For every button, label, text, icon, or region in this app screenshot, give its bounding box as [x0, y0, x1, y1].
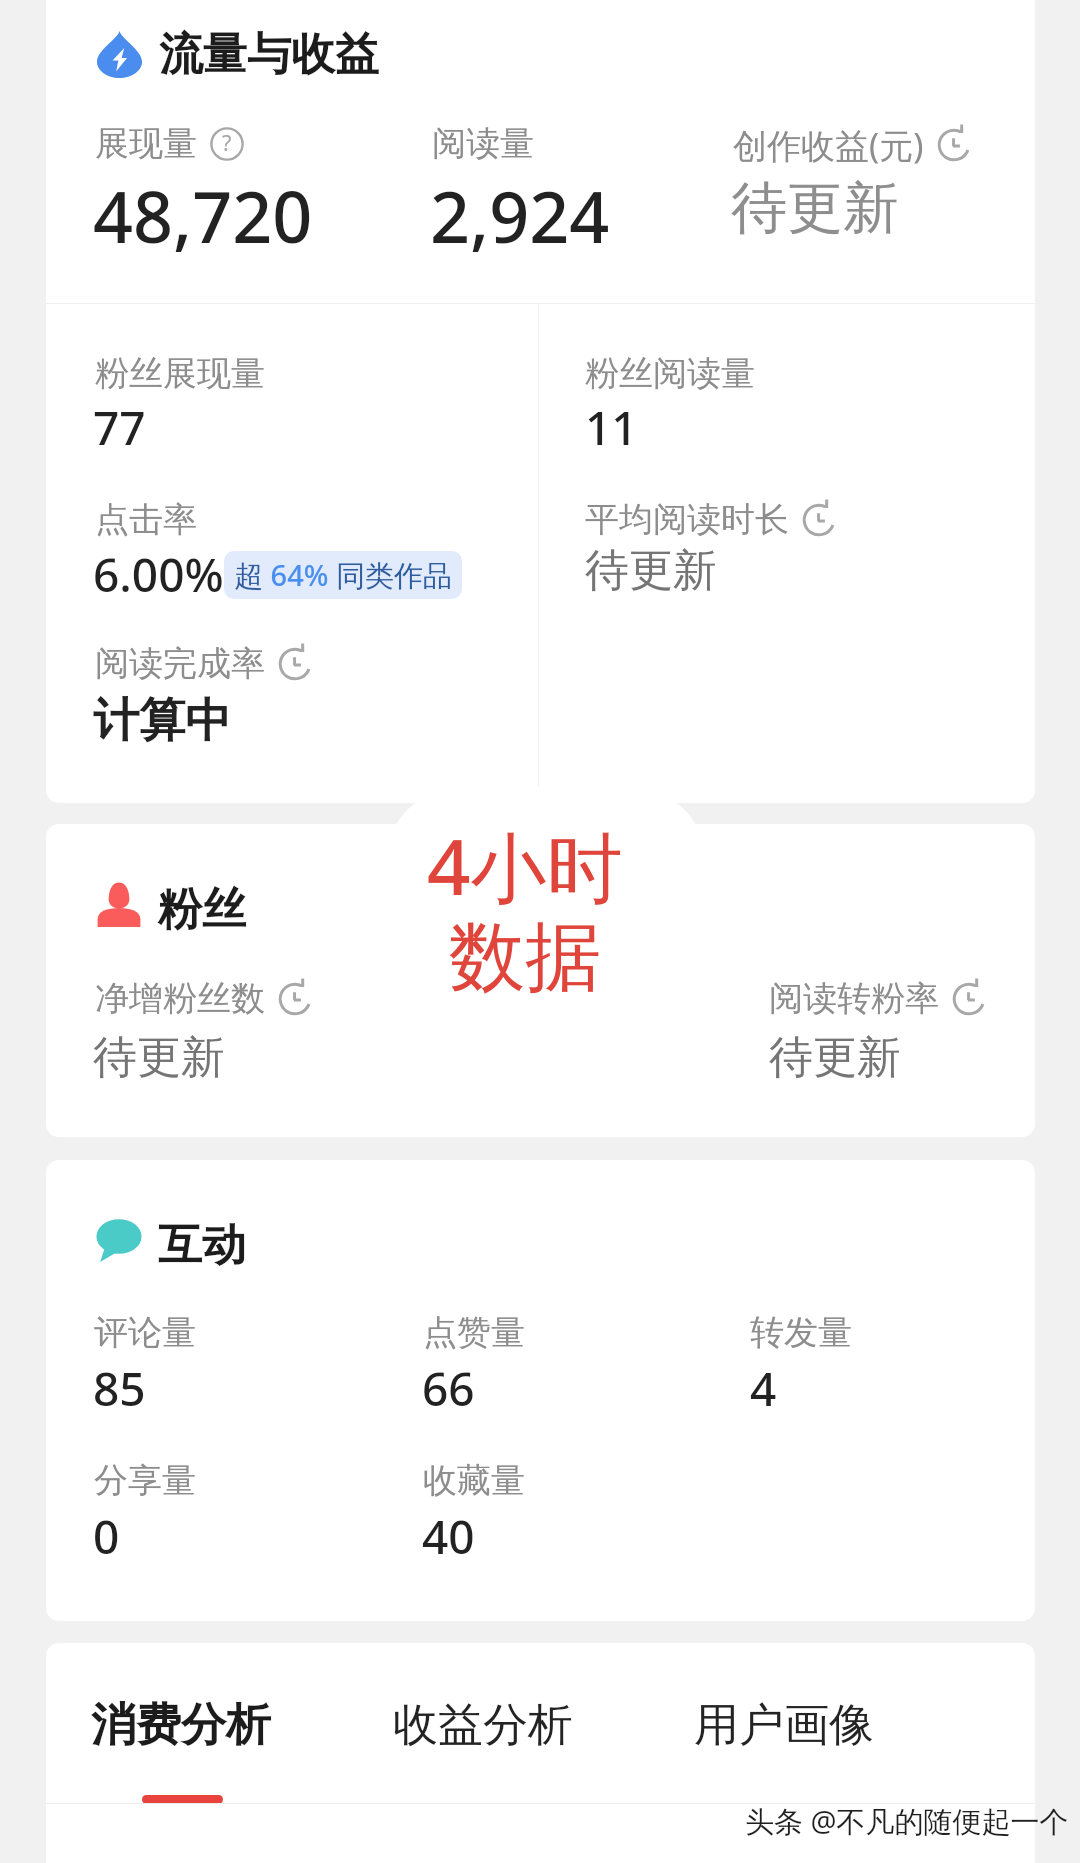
button[interactable]: 收益分析 [368, 1661, 608, 1781]
staticText: 粉丝阅读量 [585, 352, 755, 395]
staticText: 转发量 [750, 1311, 852, 1354]
button[interactable]: 指标说明 [210, 127, 244, 161]
button[interactable]: 用户画像 [669, 1661, 909, 1781]
staticText: 评论量 [94, 1311, 196, 1354]
staticText: 阅读完成率 [95, 642, 265, 685]
button[interactable]: 消费分析 [66, 1661, 306, 1781]
staticText: 85 [93, 1357, 146, 1420]
staticText: 40 [422, 1505, 475, 1568]
staticText: 2,924 [430, 168, 610, 263]
staticText: 待更新 [585, 543, 717, 598]
staticText: 创作收益(元) [733, 122, 924, 168]
staticText: 77 [93, 396, 146, 459]
staticText: 平均阅读时长 [585, 498, 789, 541]
staticText: 阅读量 [432, 122, 534, 165]
staticText: 数据 [449, 910, 601, 1006]
staticText: 消费分析 [91, 1697, 271, 1754]
staticText: 11 [585, 396, 638, 459]
staticText: 48,720 [93, 168, 313, 263]
staticText: 4小时 [427, 814, 623, 918]
staticText: 互动 [158, 1218, 246, 1273]
staticText: 分享量 [94, 1459, 196, 1502]
staticText: 待更新 [93, 1030, 225, 1085]
staticText: 展现量 [95, 122, 197, 165]
staticText: 粉丝 [158, 882, 246, 937]
staticText: 6.00% [93, 543, 224, 606]
staticText: 待更新 [731, 173, 899, 244]
staticText: 头条 @不凡的随便起一个 [745, 1801, 1069, 1841]
staticText: 计算中 [93, 692, 231, 750]
staticText: 收益分析 [393, 1697, 573, 1754]
staticText: 点赞量 [423, 1311, 525, 1354]
staticText: ? [222, 128, 232, 158]
staticText: 4 [750, 1357, 777, 1420]
staticText: 点击率 [95, 498, 197, 541]
staticText: 收藏量 [423, 1459, 525, 1502]
staticText: 0 [93, 1505, 120, 1568]
staticText: 粉丝展现量 [95, 352, 265, 395]
staticText: 流量与收益 [159, 27, 379, 82]
staticText: 用户画像 [694, 1697, 874, 1754]
staticText: 待更新 [769, 1030, 901, 1085]
staticText: 超 64% 同类作品 [234, 555, 452, 595]
staticText: 阅读转粉率 [769, 977, 939, 1020]
staticText: 净增粉丝数 [95, 977, 265, 1020]
button[interactable]: 粉丝 [46, 824, 1035, 1137]
button[interactable]: 互动 [46, 1160, 1035, 1621]
button[interactable]: 流量与收益 [46, 0, 1035, 803]
staticText: 66 [422, 1357, 475, 1420]
